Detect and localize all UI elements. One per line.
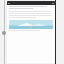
button[interactable]: Menu (7, 1, 55, 5)
button[interactable] (9, 20, 53, 29)
button[interactable]: Side marker (2, 31, 6, 35)
